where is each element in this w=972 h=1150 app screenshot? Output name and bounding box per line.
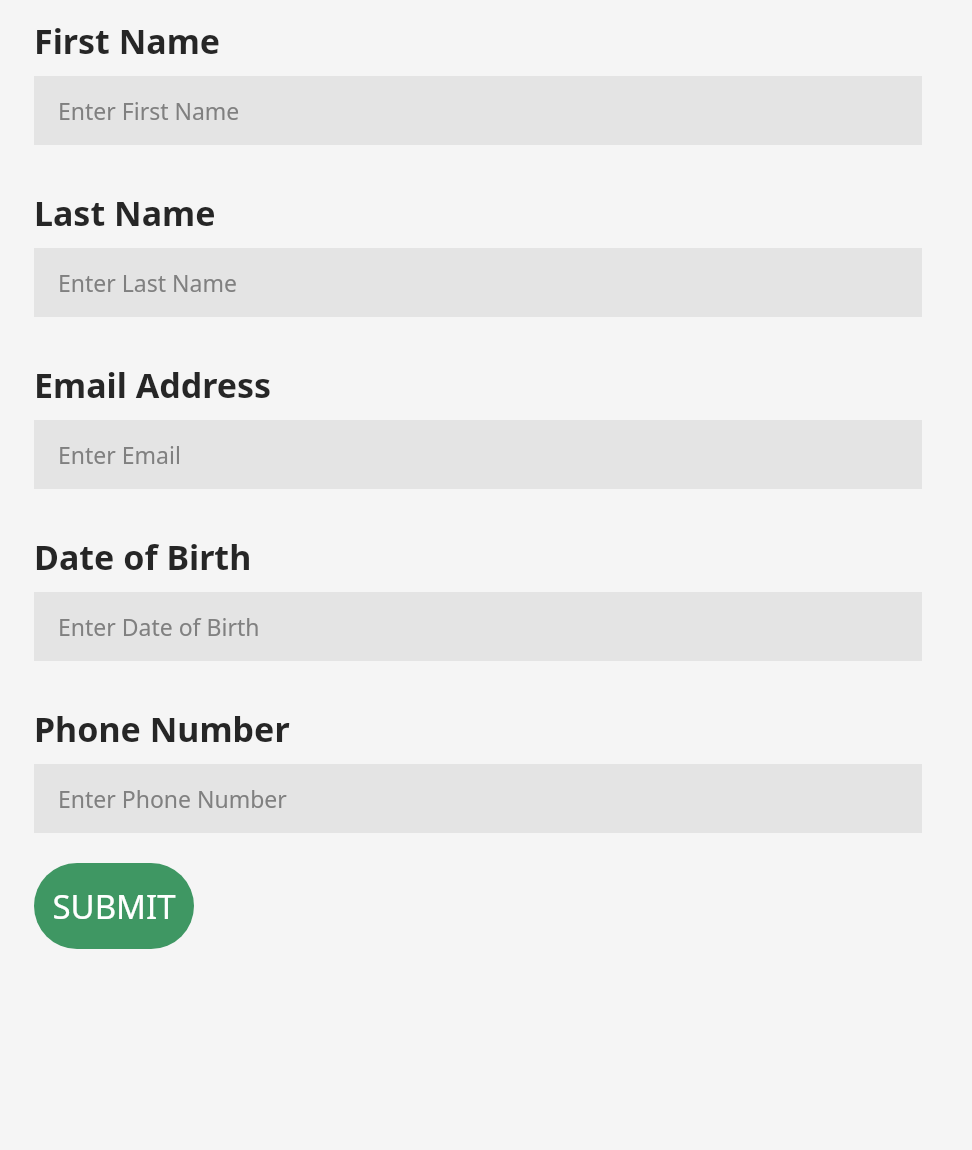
button[interactable]: Enter First Name [34, 76, 922, 145]
staticText: Date of Birth [34, 534, 252, 580]
staticText: Last Name [34, 190, 216, 236]
button[interactable]: Enter Phone Number [34, 764, 922, 833]
staticText: Enter Email [58, 439, 181, 470]
staticText: Enter Date of Birth [58, 611, 260, 642]
staticText: Enter First Name [58, 95, 240, 126]
staticText: Phone Number [34, 706, 290, 752]
button[interactable]: Enter Date of Birth [34, 592, 922, 661]
button[interactable]: Enter Last Name [34, 248, 922, 317]
button[interactable]: Enter Email [34, 420, 922, 489]
staticText: Enter Last Name [58, 267, 237, 298]
staticText: First Name [34, 18, 221, 64]
staticText: Enter Phone Number [58, 783, 287, 814]
button[interactable]: SUBMIT [34, 863, 194, 949]
staticText: Email Address [34, 362, 272, 408]
staticText: SUBMIT [52, 884, 176, 929]
